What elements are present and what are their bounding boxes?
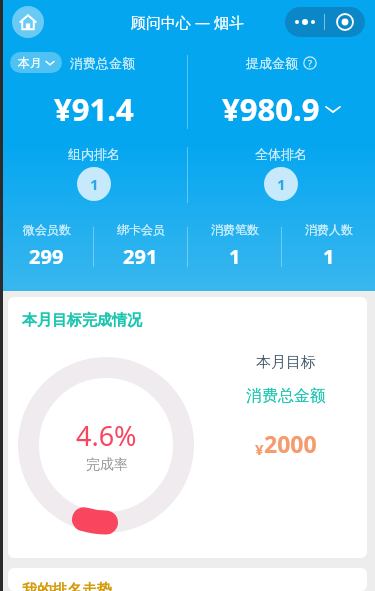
staticText: 1 bbox=[323, 243, 335, 270]
staticText: 1 bbox=[277, 174, 286, 194]
staticText: 4.6% bbox=[76, 417, 137, 454]
staticText: 消费人数 bbox=[305, 222, 353, 237]
staticText: 消费总金额 bbox=[70, 55, 135, 71]
staticText: 提成金额 bbox=[246, 55, 298, 71]
button[interactable]: Home bbox=[12, 6, 44, 38]
staticText: 本月目标完成情况 bbox=[22, 311, 142, 330]
button[interactable]: 本月 bbox=[10, 52, 62, 73]
button[interactable]: 绑卡会员 bbox=[94, 216, 187, 278]
button[interactable]: Help bbox=[303, 56, 317, 70]
staticText: 绑卡会员 bbox=[117, 222, 165, 237]
button[interactable]: 组内排名 bbox=[0, 140, 187, 210]
staticText: 消费总金额 bbox=[246, 386, 326, 406]
staticText: 299 bbox=[29, 243, 64, 270]
staticText: 顾问中心 — 烟斗 bbox=[131, 12, 244, 32]
staticText: 全体排名 bbox=[255, 146, 307, 162]
staticText: 1 bbox=[229, 243, 241, 270]
staticText: 1 bbox=[90, 174, 99, 194]
staticText: 消费笔数 bbox=[211, 222, 259, 237]
staticText: 2000 bbox=[264, 428, 317, 459]
button[interactable]: 全体排名 bbox=[187, 140, 375, 210]
staticText: 完成率 bbox=[86, 456, 128, 474]
button[interactable]: 消费人数 bbox=[282, 216, 375, 278]
button[interactable]: 微会员数 bbox=[0, 216, 93, 278]
staticText: 组内排名 bbox=[68, 146, 120, 162]
staticText: 我的排名走势 bbox=[22, 581, 112, 591]
staticText: 本月 bbox=[18, 55, 42, 70]
button[interactable]: 消费笔数 bbox=[188, 216, 281, 278]
staticText: ¥91.4 bbox=[54, 88, 134, 130]
button[interactable]: Target bbox=[325, 7, 365, 37]
staticText: 微会员数 bbox=[23, 222, 71, 237]
staticText: 本月目标 bbox=[256, 353, 316, 372]
staticText: ¥980.9 bbox=[222, 88, 320, 130]
staticText: ¥ bbox=[255, 439, 264, 459]
button[interactable]: More options bbox=[285, 7, 324, 37]
staticText: ? bbox=[308, 57, 312, 69]
staticText: 291 bbox=[123, 243, 158, 270]
